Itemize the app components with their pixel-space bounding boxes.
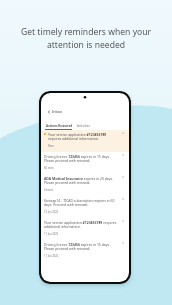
staticText: Driving licence 123456 expires in 16 day…: [44, 242, 120, 251]
button[interactable]: Actions Required: [41, 122, 74, 130]
button[interactable]: Driving licence 123456 expires in 16 day…: [41, 240, 129, 262]
button[interactable]: Back: [46, 109, 52, 115]
staticText: Inbox: [52, 109, 62, 114]
staticText: Your service application #123456789 requ…: [44, 220, 120, 229]
staticText: ADA Medical Insurance expires in 20 days…: [44, 176, 120, 185]
staticText: 11 Jun 2022: [44, 232, 59, 236]
button[interactable]: Kaiseap14 - TICAD subscription expires i…: [41, 196, 129, 218]
staticText: Driving licence 123456 expires in 15 day…: [44, 154, 120, 163]
staticText: 6 hours: [44, 188, 54, 192]
button[interactable]: Your service application #123456789 requ…: [41, 130, 129, 152]
staticText: Your service application #123456789 requ…: [48, 132, 120, 141]
staticText: Now: [48, 144, 54, 148]
staticText: Kaiseap14 - TICAD subscription expires i…: [44, 198, 120, 207]
button[interactable]: Your service application #123456789 requ…: [41, 218, 129, 240]
button[interactable]: ADA Medical Insurance expires in 20 days…: [41, 174, 129, 196]
button[interactable]: Driving licence 123456 expires in 15 day…: [41, 152, 129, 174]
staticText: 11 Jun 2022: [44, 254, 59, 258]
staticText: 60 mins: [44, 166, 54, 170]
staticText: Actions Required: [46, 124, 73, 127]
staticText: 12 Jun 2022: [44, 210, 59, 214]
staticText: Get timely reminders when your attention…: [10, 26, 162, 50]
staticText: Activities: [77, 124, 90, 127]
button[interactable]: Activities: [74, 122, 90, 130]
